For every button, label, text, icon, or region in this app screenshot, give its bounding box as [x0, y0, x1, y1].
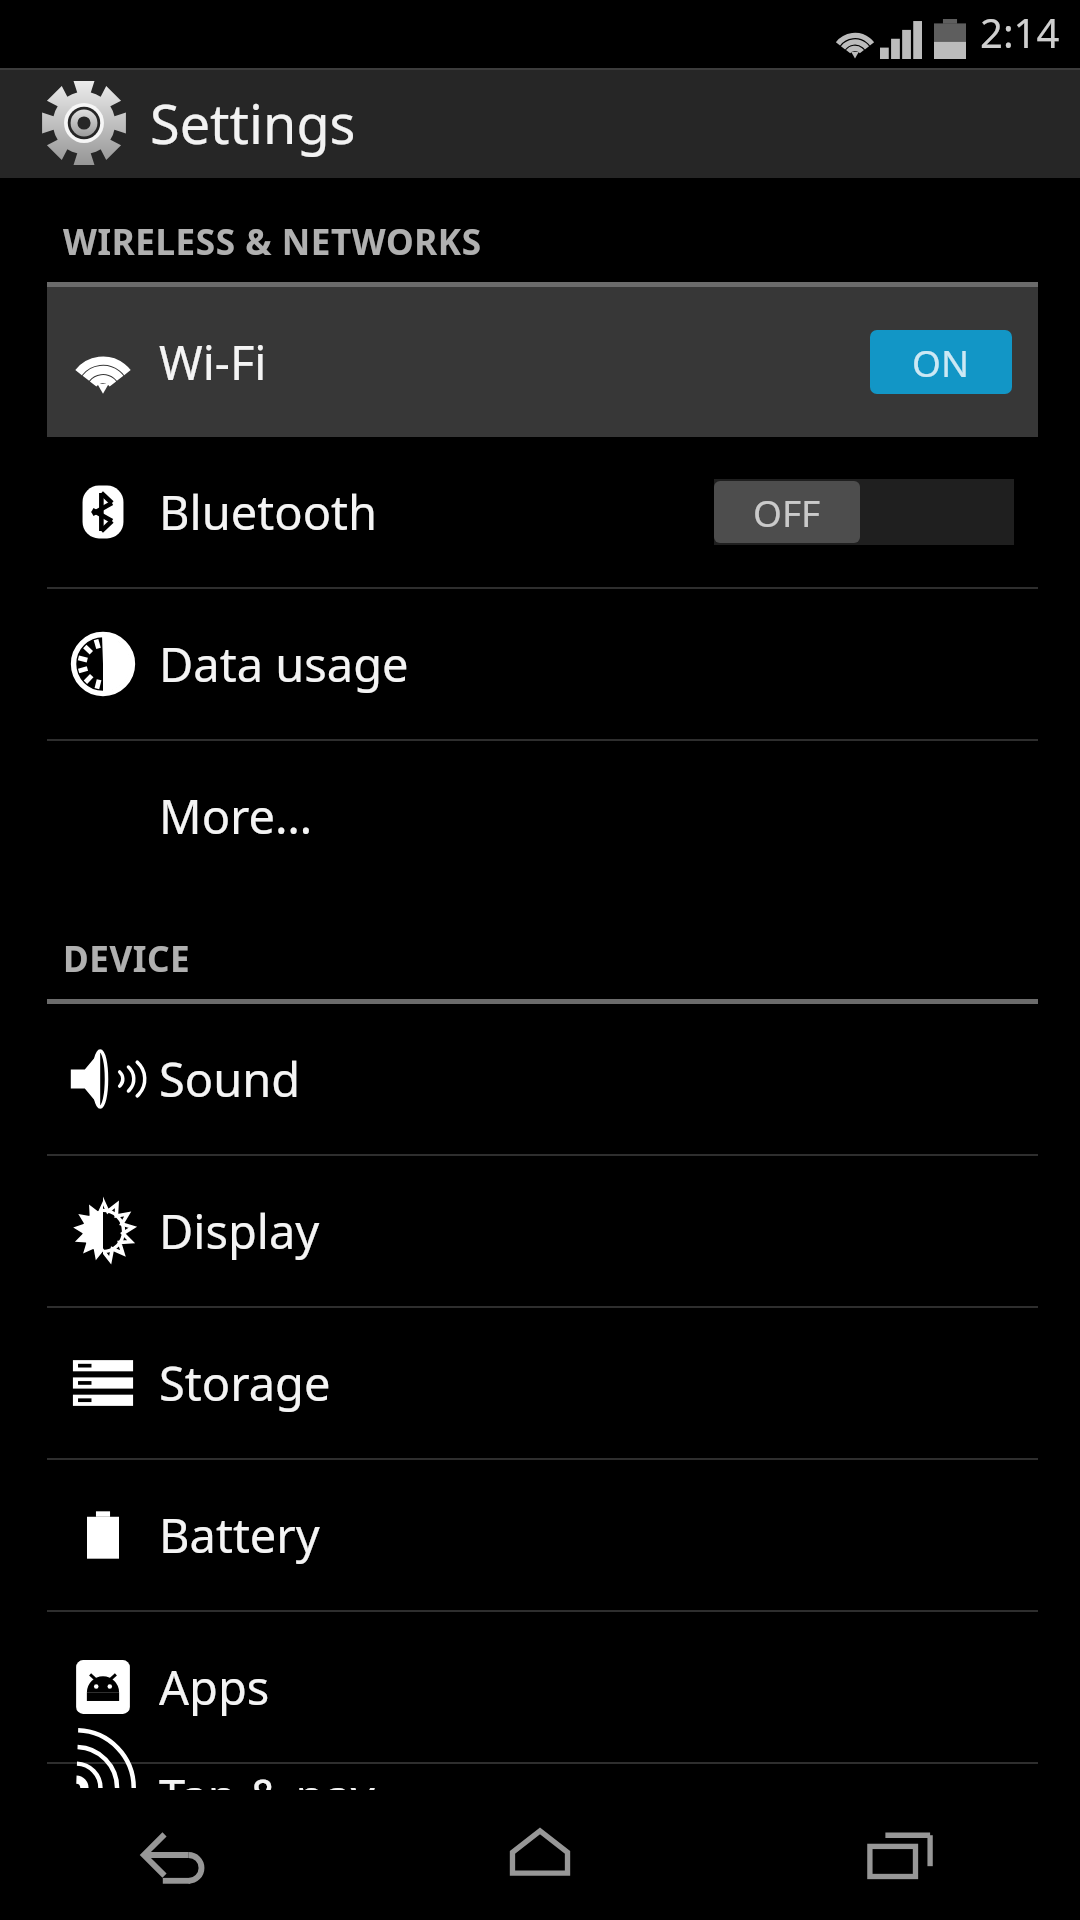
button[interactable]: Data usage	[0, 589, 1080, 739]
staticText: DEVICE	[63, 935, 191, 983]
staticText: Display	[159, 1199, 320, 1263]
staticText: ON	[912, 337, 970, 387]
staticText: Wi-Fi	[159, 330, 267, 394]
button[interactable]: Storage	[0, 1308, 1080, 1458]
staticText: Settings	[150, 86, 356, 160]
staticText: Battery	[159, 1503, 320, 1567]
button[interactable]: Home	[360, 1790, 720, 1920]
staticText: Tap & pay	[159, 1764, 375, 1790]
staticText: 2:14	[980, 5, 1060, 59]
button[interactable]: Bluetooth off	[714, 479, 1014, 545]
button[interactable]: Sound	[0, 1004, 1080, 1154]
staticText: Apps	[159, 1655, 270, 1719]
staticText: Bluetooth	[159, 480, 378, 544]
button[interactable]: Recent apps	[720, 1790, 1080, 1920]
staticText: Storage	[159, 1351, 331, 1415]
staticText: More…	[159, 784, 313, 848]
button[interactable]: More…	[0, 741, 1080, 891]
staticText: OFF	[753, 487, 821, 537]
button[interactable]: Wi-Fi on	[742, 329, 1038, 395]
button[interactable]: Tap & pay	[0, 1764, 1080, 1790]
staticText: Data usage	[159, 632, 409, 696]
button[interactable]: Battery	[0, 1460, 1080, 1610]
button[interactable]: Display	[0, 1156, 1080, 1306]
button[interactable]: Settings	[0, 68, 1080, 178]
button[interactable]: Wi-Fi	[47, 287, 1038, 437]
button[interactable]: Bluetooth	[0, 437, 1080, 587]
button[interactable]: Apps	[0, 1612, 1080, 1762]
staticText: WIRELESS & NETWORKS	[63, 218, 482, 266]
button[interactable]: Back	[0, 1790, 360, 1920]
staticText: Sound	[159, 1047, 301, 1111]
